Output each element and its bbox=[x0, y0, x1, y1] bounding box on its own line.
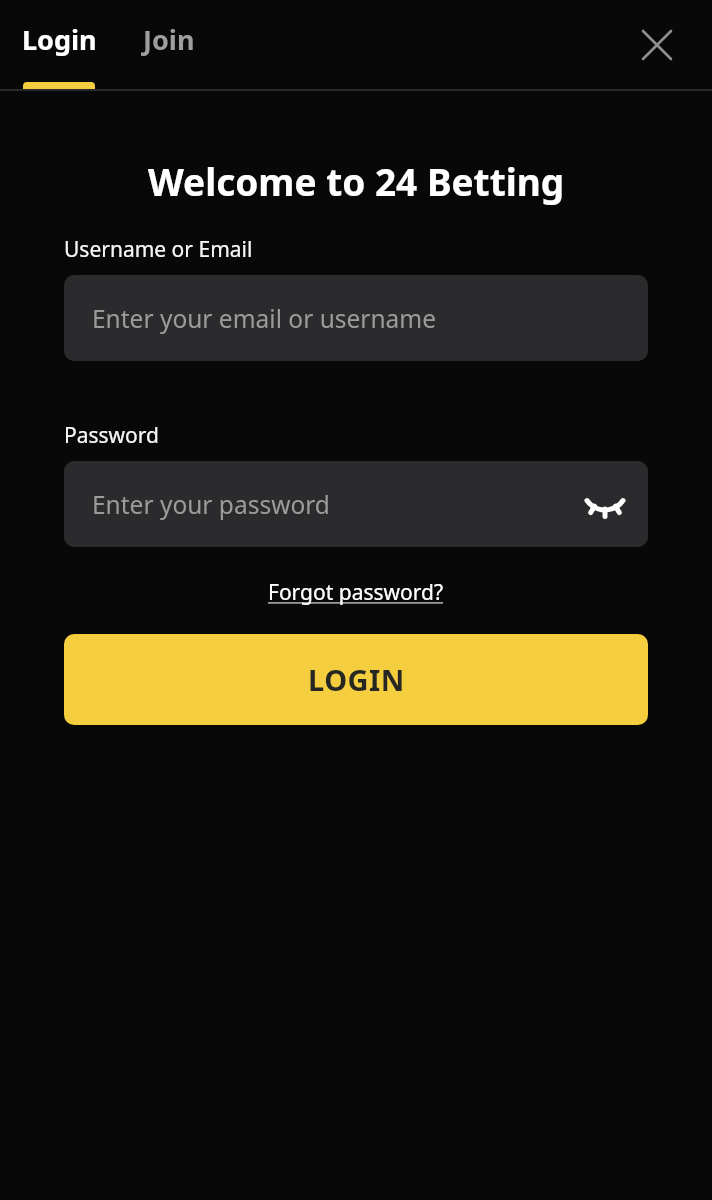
staticText: Username or Email bbox=[64, 235, 253, 260]
staticText: Password bbox=[64, 421, 159, 446]
button[interactable]: Enter your password bbox=[64, 461, 648, 547]
button[interactable]: Forgot password? bbox=[268, 578, 444, 607]
button[interactable]: Login bbox=[22, 21, 97, 58]
button[interactable] bbox=[629, 17, 685, 73]
button[interactable]: Join bbox=[143, 21, 195, 58]
staticText: LOGIN bbox=[308, 660, 405, 699]
staticText: Forgot password? bbox=[268, 578, 444, 607]
staticText: Join bbox=[143, 21, 195, 58]
staticText: Enter your password bbox=[92, 488, 330, 521]
staticText: Login bbox=[22, 21, 97, 58]
button[interactable]: Enter your email or username bbox=[64, 275, 648, 361]
staticText: Welcome to 24 Betting bbox=[148, 156, 565, 206]
staticText: Enter your email or username bbox=[92, 302, 437, 335]
button[interactable]: LOGIN bbox=[64, 634, 648, 725]
